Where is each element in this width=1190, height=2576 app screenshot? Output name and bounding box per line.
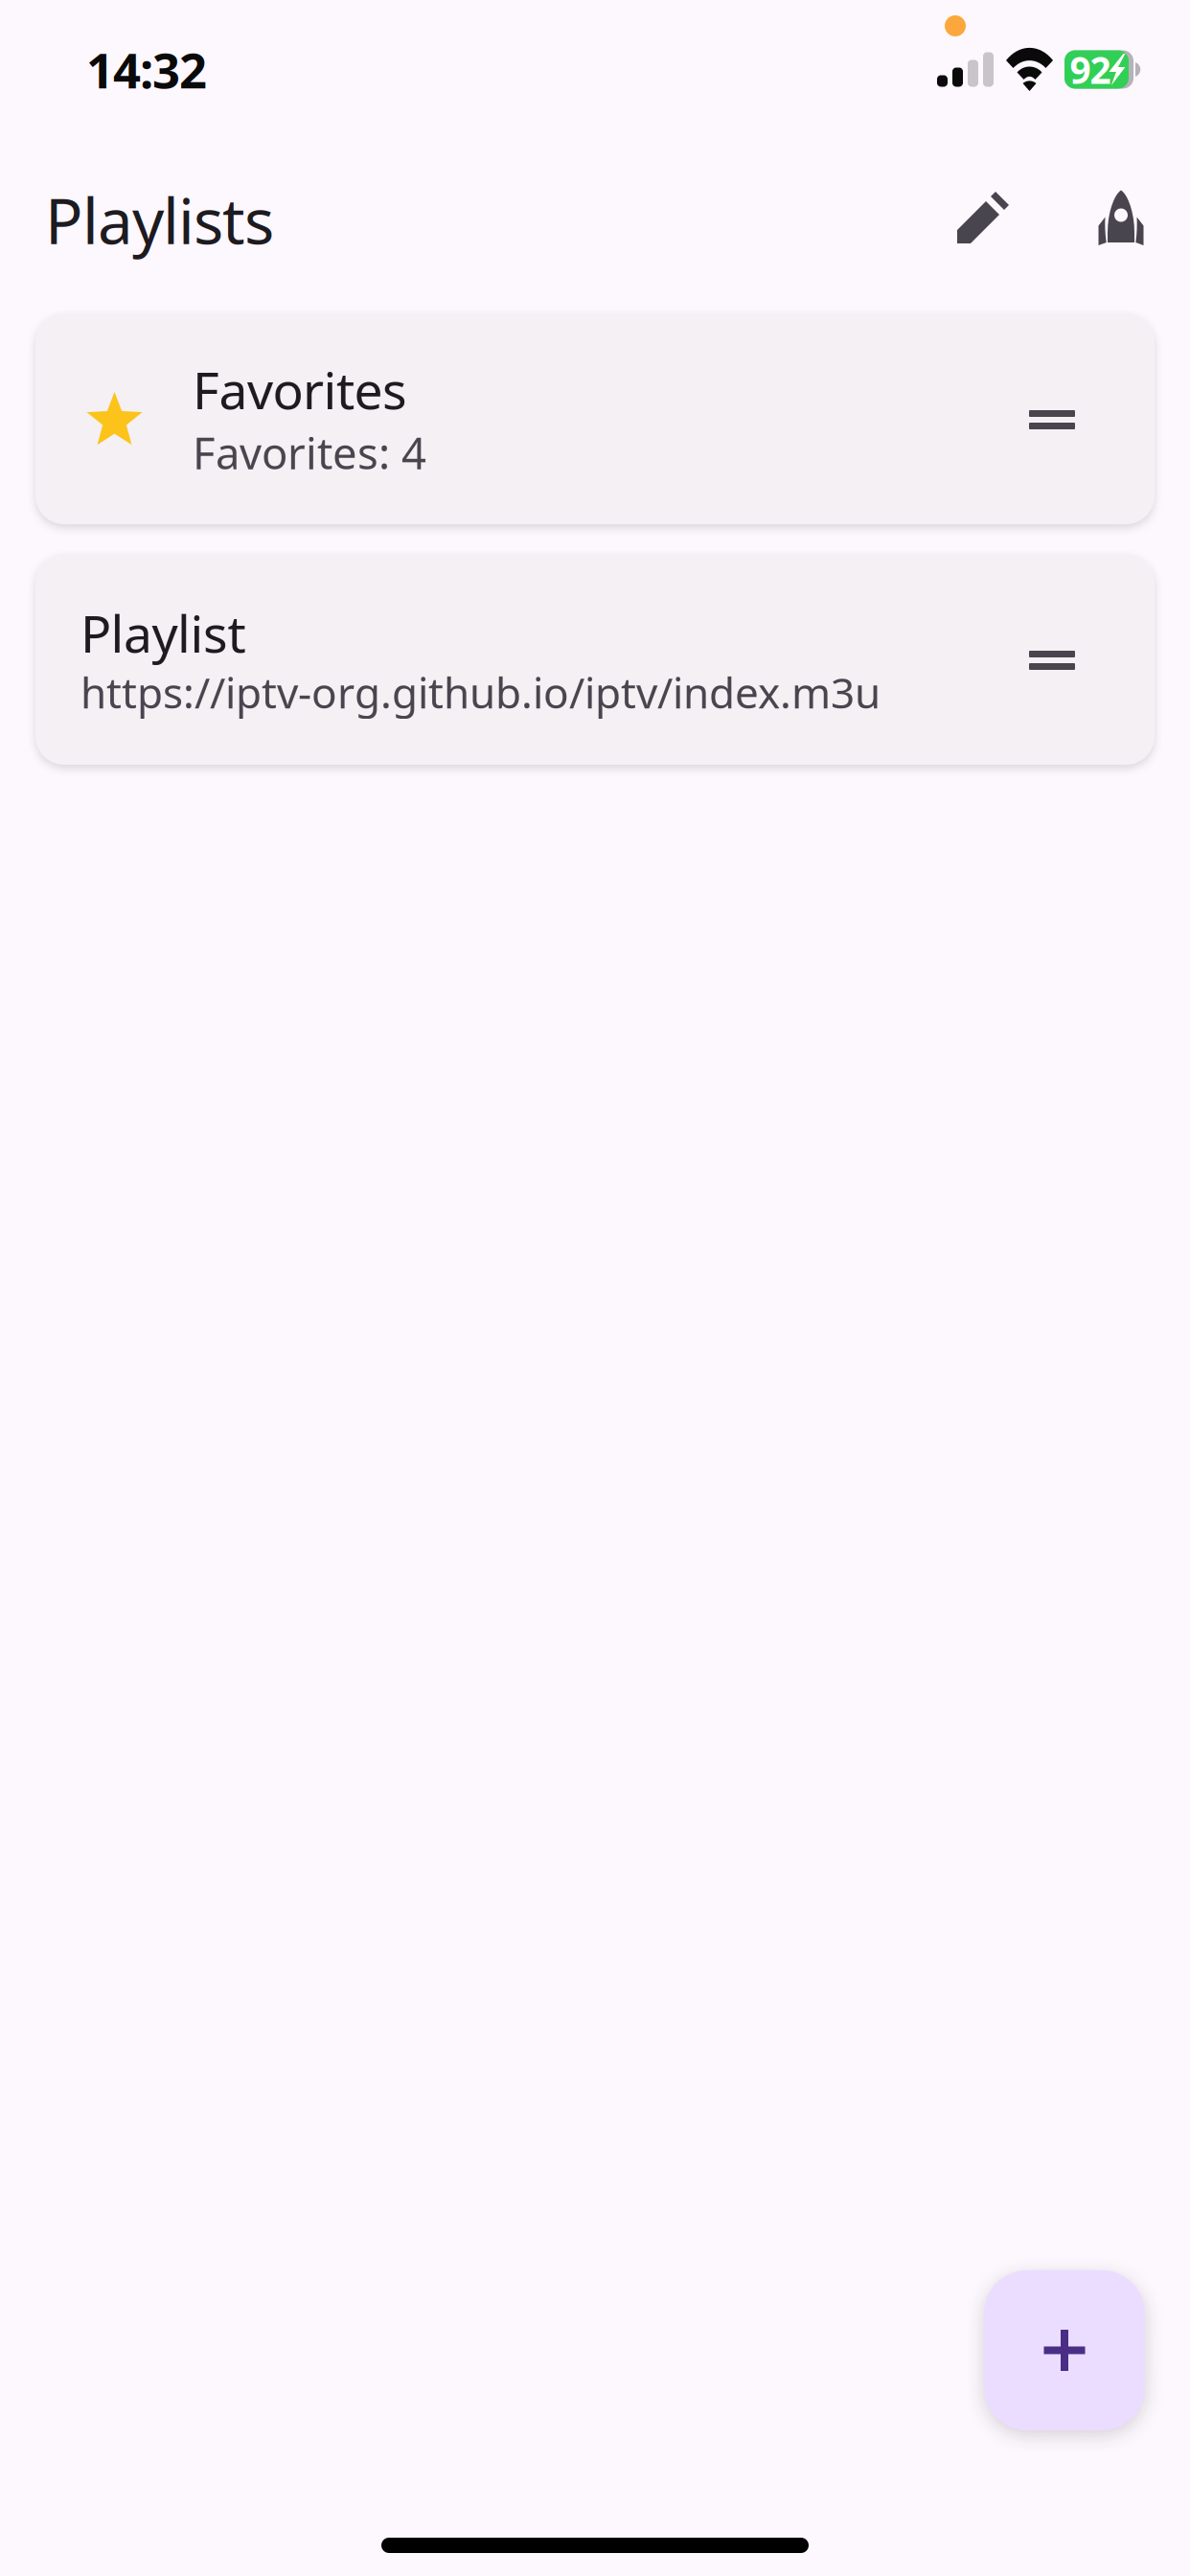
staticText: 14:32 <box>86 37 207 102</box>
button[interactable]: Quick start <box>1064 161 1179 276</box>
staticText: Favorites: 4 <box>193 424 426 481</box>
button[interactable]: Playlist <box>35 554 1155 765</box>
staticText: https://iptv-org.github.io/iptv/index.m3… <box>80 664 881 720</box>
button[interactable]: Add playlist <box>984 2270 1145 2430</box>
staticText: Favorites <box>193 356 407 423</box>
button[interactable]: Edit playlists <box>926 161 1041 276</box>
staticText: 92 <box>1070 45 1111 94</box>
staticText: Playlists <box>45 178 274 261</box>
staticText: Playlist <box>80 599 246 667</box>
button[interactable]: Favorites <box>35 313 1155 524</box>
